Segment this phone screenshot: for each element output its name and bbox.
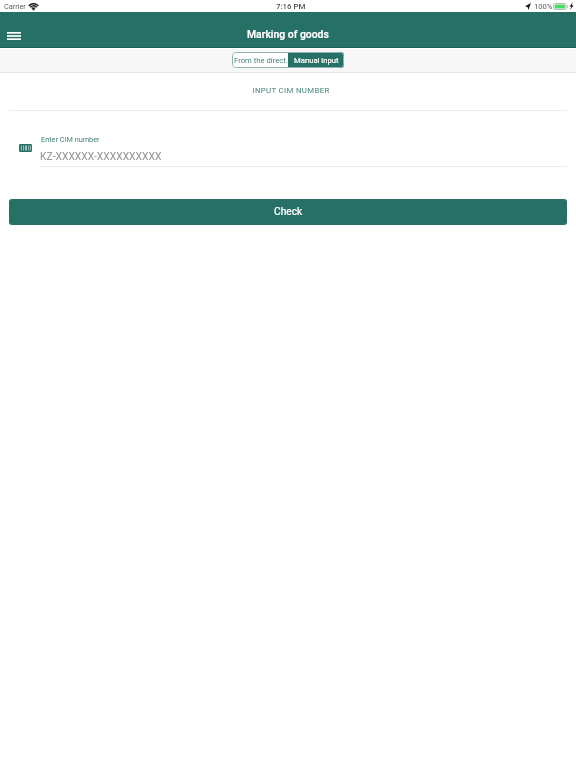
staticText: KZ-XXXXXX-XXXXXXXXXX: [40, 150, 162, 162]
button[interactable]: From the direct…: [232, 52, 288, 68]
button[interactable]: Manual input: [288, 52, 344, 68]
button[interactable]: Scan barcode: [11, 136, 39, 160]
button[interactable]: Open navigation menu: [0, 24, 28, 48]
staticText: Manual input: [294, 56, 339, 65]
button[interactable]: Enter CIM number: [40, 131, 567, 167]
staticText: 7:16 PM: [276, 2, 306, 11]
staticText: INPUT CIM NUMBER: [3, 86, 576, 95]
staticText: Marking of goods: [247, 28, 329, 40]
staticText: Carrier: [4, 2, 26, 11]
button[interactable]: Check: [9, 199, 567, 225]
staticText: Enter CIM number: [41, 135, 100, 144]
staticText: 100%: [534, 2, 553, 11]
staticText: From the direct…: [234, 56, 288, 65]
staticText: Check: [274, 206, 303, 218]
